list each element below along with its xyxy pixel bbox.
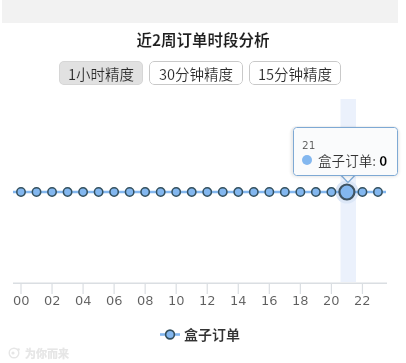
staticText: 02 — [44, 293, 61, 307]
staticText: 30分钟精度 — [159, 63, 234, 84]
staticText: 08 — [137, 293, 154, 307]
button[interactable]: 1小时精度 — [59, 61, 143, 85]
staticText: 10 — [168, 293, 185, 307]
staticText: 21 — [302, 139, 316, 151]
staticText: 盒子订单 — [184, 324, 240, 344]
staticText: 盒子订单: 0 — [318, 150, 388, 170]
staticText: 12 — [199, 293, 216, 307]
staticText: 18 — [292, 293, 309, 307]
staticText: 近2周订单时段分析 — [0, 28, 406, 50]
staticText: 16 — [261, 293, 278, 307]
staticText: 20 — [323, 293, 340, 307]
staticText: 1小时精度 — [68, 63, 135, 84]
staticText: 15分钟精度 — [258, 63, 333, 84]
staticText: 22 — [354, 293, 371, 307]
staticText: 为你而来 — [25, 345, 69, 361]
button[interactable]: 15分钟精度 — [249, 61, 341, 85]
button[interactable]: 盒子订单 — [160, 324, 240, 344]
staticText: 04 — [75, 293, 92, 307]
button[interactable]: 30分钟精度 — [149, 61, 243, 85]
staticText: 00 — [13, 293, 30, 307]
staticText: 14 — [230, 293, 247, 307]
staticText: 06 — [106, 293, 123, 307]
